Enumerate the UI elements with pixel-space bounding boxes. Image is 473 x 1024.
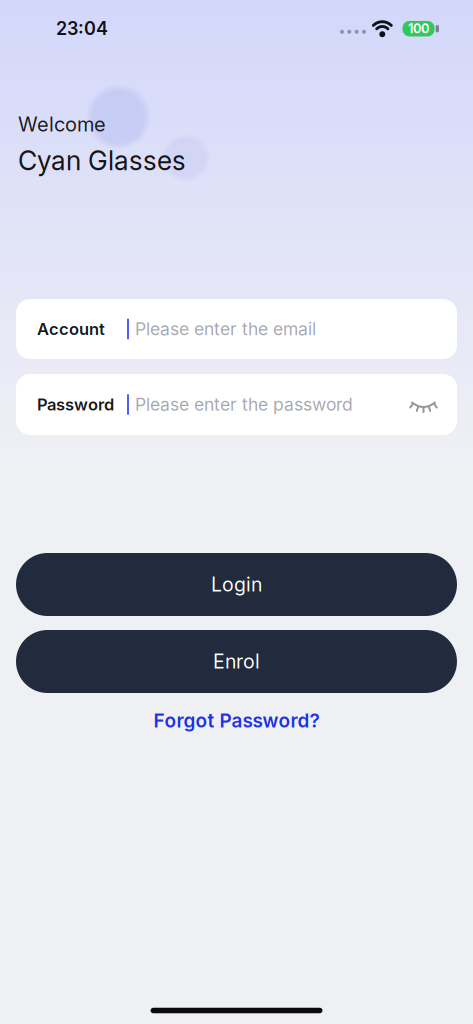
staticText: Forgot Password? <box>153 709 319 732</box>
staticText: 23:04 <box>56 18 108 39</box>
staticText: Enrol <box>213 650 260 673</box>
button[interactable]: Enrol <box>16 630 457 693</box>
staticText: Login <box>211 573 262 596</box>
staticText: Please enter the password <box>135 394 353 415</box>
staticText: Password <box>37 394 114 414</box>
button[interactable] <box>405 388 441 424</box>
button[interactable]: Password <box>16 374 457 435</box>
staticText: Account <box>37 319 105 339</box>
button[interactable]: Account <box>16 299 457 359</box>
staticText: Cyan Glasses <box>18 144 186 177</box>
staticText: 100 <box>408 21 429 36</box>
staticText: Please enter the email <box>135 318 316 340</box>
button[interactable]: Forgot Password? <box>153 705 319 735</box>
staticText: Welcome <box>18 112 106 136</box>
button[interactable]: Login <box>16 553 457 616</box>
